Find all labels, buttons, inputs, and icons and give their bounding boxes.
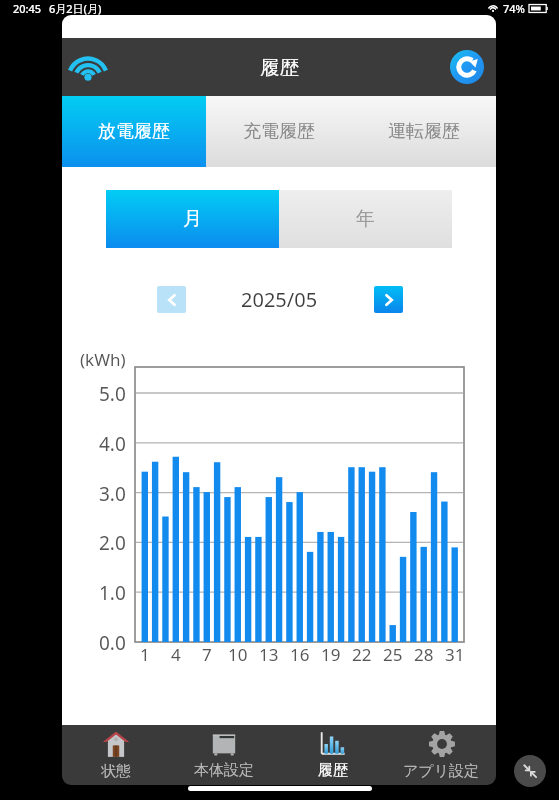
staticText: 10: [228, 643, 248, 666]
staticText: 19: [321, 643, 341, 666]
staticText: 25: [383, 643, 403, 666]
staticText: 本体設定: [194, 761, 254, 780]
button[interactable]: 本体設定: [170, 725, 278, 785]
staticText: 2025/05: [241, 286, 318, 313]
staticText: 充電履歴: [243, 120, 315, 143]
staticText: 0.0: [99, 630, 126, 654]
staticText: 6月2日(月): [49, 1, 102, 16]
staticText: 放電履歴: [98, 120, 170, 143]
button[interactable]: 放電履歴: [62, 96, 206, 167]
button[interactable]: 月: [106, 190, 279, 248]
staticText: 月: [183, 207, 202, 231]
button[interactable]: アプリ設定: [387, 725, 496, 785]
button[interactable]: 履歴: [278, 725, 387, 785]
button[interactable]: Wi-Fi: [64, 43, 112, 91]
staticText: (kWh): [80, 348, 126, 370]
button[interactable]: 充電履歴: [206, 96, 351, 167]
staticText: 5.0: [99, 381, 126, 405]
staticText: 1.0: [99, 580, 126, 604]
staticText: 状態: [101, 762, 131, 781]
staticText: 74%: [503, 1, 525, 16]
staticText: 運転履歴: [388, 120, 460, 143]
staticText: 13: [259, 643, 279, 666]
button[interactable]: Next: [374, 286, 403, 313]
staticText: 履歴: [318, 761, 348, 780]
staticText: 3.0: [99, 481, 126, 505]
button[interactable]: 年: [279, 190, 452, 248]
staticText: 20:45: [13, 1, 42, 16]
staticText: 履歴: [260, 55, 299, 80]
staticText: 4.0: [99, 431, 126, 455]
staticText: アプリ設定: [403, 762, 480, 781]
staticText: 22: [352, 643, 372, 666]
staticText: 7: [202, 643, 212, 666]
staticText: 4: [171, 643, 181, 666]
button[interactable]: Previous: [157, 286, 186, 313]
button[interactable]: Shrink: [514, 755, 546, 787]
staticText: 16: [290, 643, 310, 666]
staticText: 年: [356, 207, 375, 231]
staticText: 31: [445, 643, 465, 666]
button[interactable]: 運転履歴: [351, 96, 496, 167]
button[interactable]: 状態: [62, 725, 170, 785]
staticText: 2.0: [99, 530, 126, 554]
button[interactable]: Refresh: [450, 50, 484, 84]
staticText: 1: [140, 643, 150, 666]
staticText: 28: [414, 643, 434, 666]
